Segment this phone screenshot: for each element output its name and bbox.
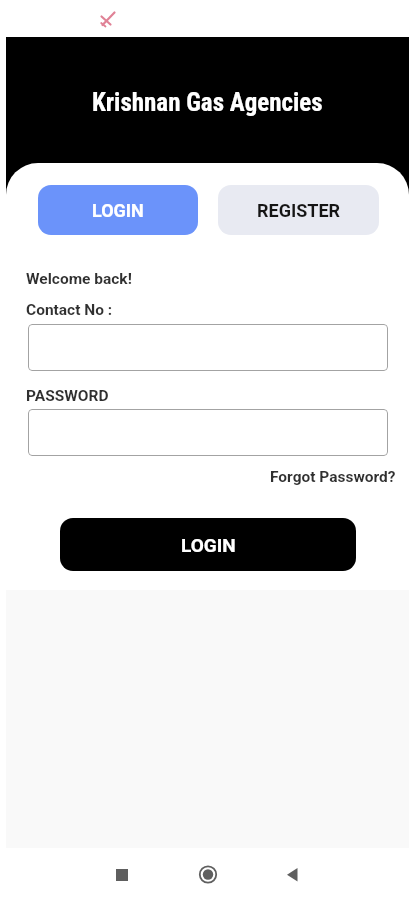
button[interactable]: LOGIN — [38, 185, 198, 235]
button[interactable]: Recent apps — [100, 848, 144, 900]
staticText: PASSWORD — [26, 387, 109, 405]
button[interactable]: REGISTER — [218, 185, 379, 235]
button[interactable]: Forgot Password? — [270, 468, 409, 486]
staticText: REGISTER — [257, 200, 341, 221]
staticText: Krishnan Gas Agencies — [92, 88, 323, 117]
staticText: LOGIN — [181, 534, 236, 556]
other: Airplane mode — [0, 0, 415, 37]
button[interactable]: LOGIN — [60, 518, 356, 571]
staticText: Contact No : — [26, 301, 113, 319]
button[interactable]: Home — [186, 848, 230, 900]
button[interactable] — [28, 409, 388, 456]
staticText: LOGIN — [92, 200, 144, 221]
button[interactable] — [28, 324, 388, 371]
button[interactable]: Back — [270, 848, 314, 900]
staticText: Welcome back! — [26, 270, 132, 288]
